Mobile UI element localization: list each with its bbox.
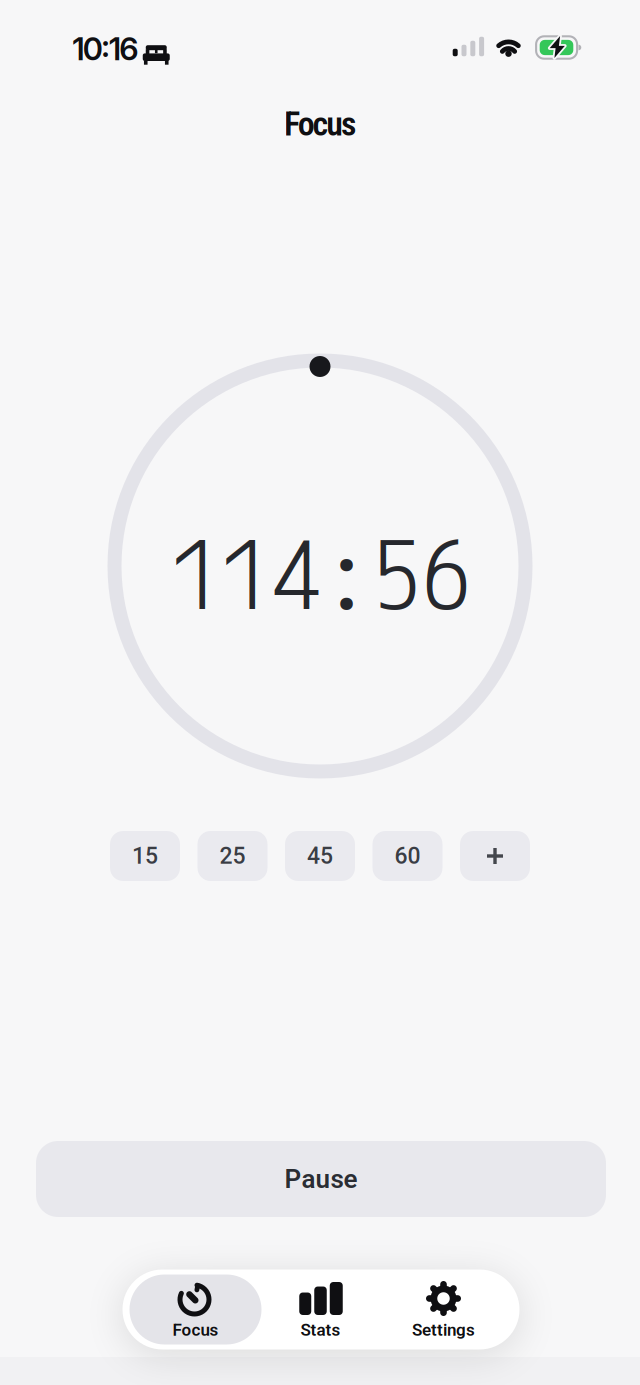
button[interactable]: Focus — [129, 1269, 261, 1349]
button[interactable]: 45 — [285, 831, 355, 881]
button[interactable]: Stats — [258, 1269, 382, 1349]
staticText: 25 — [219, 842, 245, 869]
staticText: 45 — [307, 842, 333, 869]
staticText: Focus — [284, 104, 356, 144]
staticText: Pause — [284, 1164, 357, 1194]
staticText: Stats — [300, 1320, 340, 1340]
button[interactable]: 15 — [110, 831, 180, 881]
button[interactable]: Pause — [36, 1141, 606, 1217]
button[interactable]: 25 — [197, 831, 267, 881]
staticText: 10:16 — [72, 30, 138, 68]
button[interactable]: Settings — [381, 1269, 505, 1349]
staticText: 114:56 — [173, 515, 470, 631]
staticText: 60 — [394, 842, 420, 869]
staticText: 15 — [132, 842, 158, 869]
button[interactable]: Add custom duration — [460, 831, 530, 881]
button[interactable]: 60 — [372, 831, 442, 881]
staticText: Focus — [172, 1320, 218, 1340]
staticText: Settings — [412, 1320, 475, 1340]
